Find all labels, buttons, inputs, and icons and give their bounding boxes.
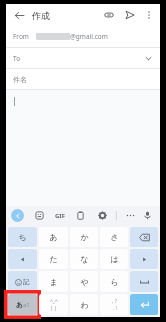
button[interactable]: Cursor left bbox=[8, 249, 37, 269]
button[interactable]: た bbox=[39, 249, 68, 269]
staticText: か bbox=[80, 232, 89, 242]
staticText: GIF bbox=[55, 212, 65, 220]
staticText: は bbox=[110, 254, 119, 264]
staticText: 件名 bbox=[13, 75, 27, 84]
button[interactable]: Backspace bbox=[130, 227, 158, 247]
staticText: あ bbox=[16, 301, 23, 309]
button[interactable]: GIF bbox=[55, 209, 65, 222]
button[interactable]: 件名 bbox=[6, 69, 160, 89]
button[interactable]: Send bbox=[122, 7, 138, 23]
button[interactable]: Attach file bbox=[101, 7, 117, 23]
button[interactable]: Punctuation bbox=[100, 294, 128, 315]
button[interactable]: あ bbox=[39, 227, 68, 247]
button[interactable]: ち bbox=[8, 227, 37, 247]
staticText: ^_^ bbox=[50, 298, 58, 305]
button[interactable]: Settings bbox=[96, 209, 109, 222]
staticText: あ bbox=[49, 232, 58, 242]
button[interactable]: さ bbox=[100, 227, 128, 247]
button[interactable]: Clipboard bbox=[74, 209, 87, 222]
button[interactable]: More keyboard options bbox=[124, 209, 137, 222]
staticText: ち bbox=[18, 232, 27, 242]
staticText: To bbox=[13, 54, 21, 63]
staticText: a1 bbox=[23, 301, 30, 309]
staticText: た bbox=[49, 254, 58, 264]
button[interactable]: Space bbox=[130, 271, 158, 292]
button[interactable]: Switch input mode bbox=[8, 294, 37, 315]
button[interactable]: To bbox=[6, 48, 160, 68]
staticText: な bbox=[80, 254, 89, 264]
button[interactable]: Cursor right bbox=[130, 249, 158, 269]
button[interactable]: な bbox=[70, 249, 98, 269]
button[interactable]: Enter bbox=[130, 294, 158, 315]
staticText: さ bbox=[110, 232, 119, 242]
button[interactable]: か bbox=[70, 227, 98, 247]
button[interactable]: Emoji and symbols bbox=[8, 271, 37, 292]
staticText: わ bbox=[80, 300, 89, 310]
staticText: ま bbox=[49, 277, 58, 287]
button[interactable]: Back bbox=[11, 7, 27, 23]
button[interactable]: は bbox=[100, 249, 128, 269]
staticText: 作成 bbox=[32, 10, 50, 21]
staticText: ら bbox=[110, 277, 119, 287]
button[interactable]: わ bbox=[70, 294, 98, 315]
staticText: や bbox=[80, 277, 89, 287]
staticText: 記 bbox=[23, 278, 30, 286]
button[interactable]: Voice input bbox=[141, 209, 154, 222]
staticText: @gmail.com bbox=[70, 32, 108, 41]
button[interactable]: ま bbox=[39, 271, 68, 292]
button[interactable]: ら bbox=[100, 271, 128, 292]
button[interactable]: From bbox=[6, 26, 160, 47]
button[interactable]: Stickers bbox=[33, 209, 46, 222]
staticText: ( ) bbox=[51, 305, 57, 311]
button[interactable]: Collapse toolbar bbox=[11, 209, 24, 222]
button[interactable]: や bbox=[70, 271, 98, 292]
button[interactable]: More options bbox=[142, 8, 156, 22]
staticText: , ? bbox=[112, 298, 117, 305]
button[interactable]: Kaomoji bbox=[39, 294, 68, 315]
staticText: From bbox=[13, 32, 29, 41]
other: Expand recipients bbox=[143, 53, 153, 63]
staticText: . ! bbox=[113, 305, 117, 312]
